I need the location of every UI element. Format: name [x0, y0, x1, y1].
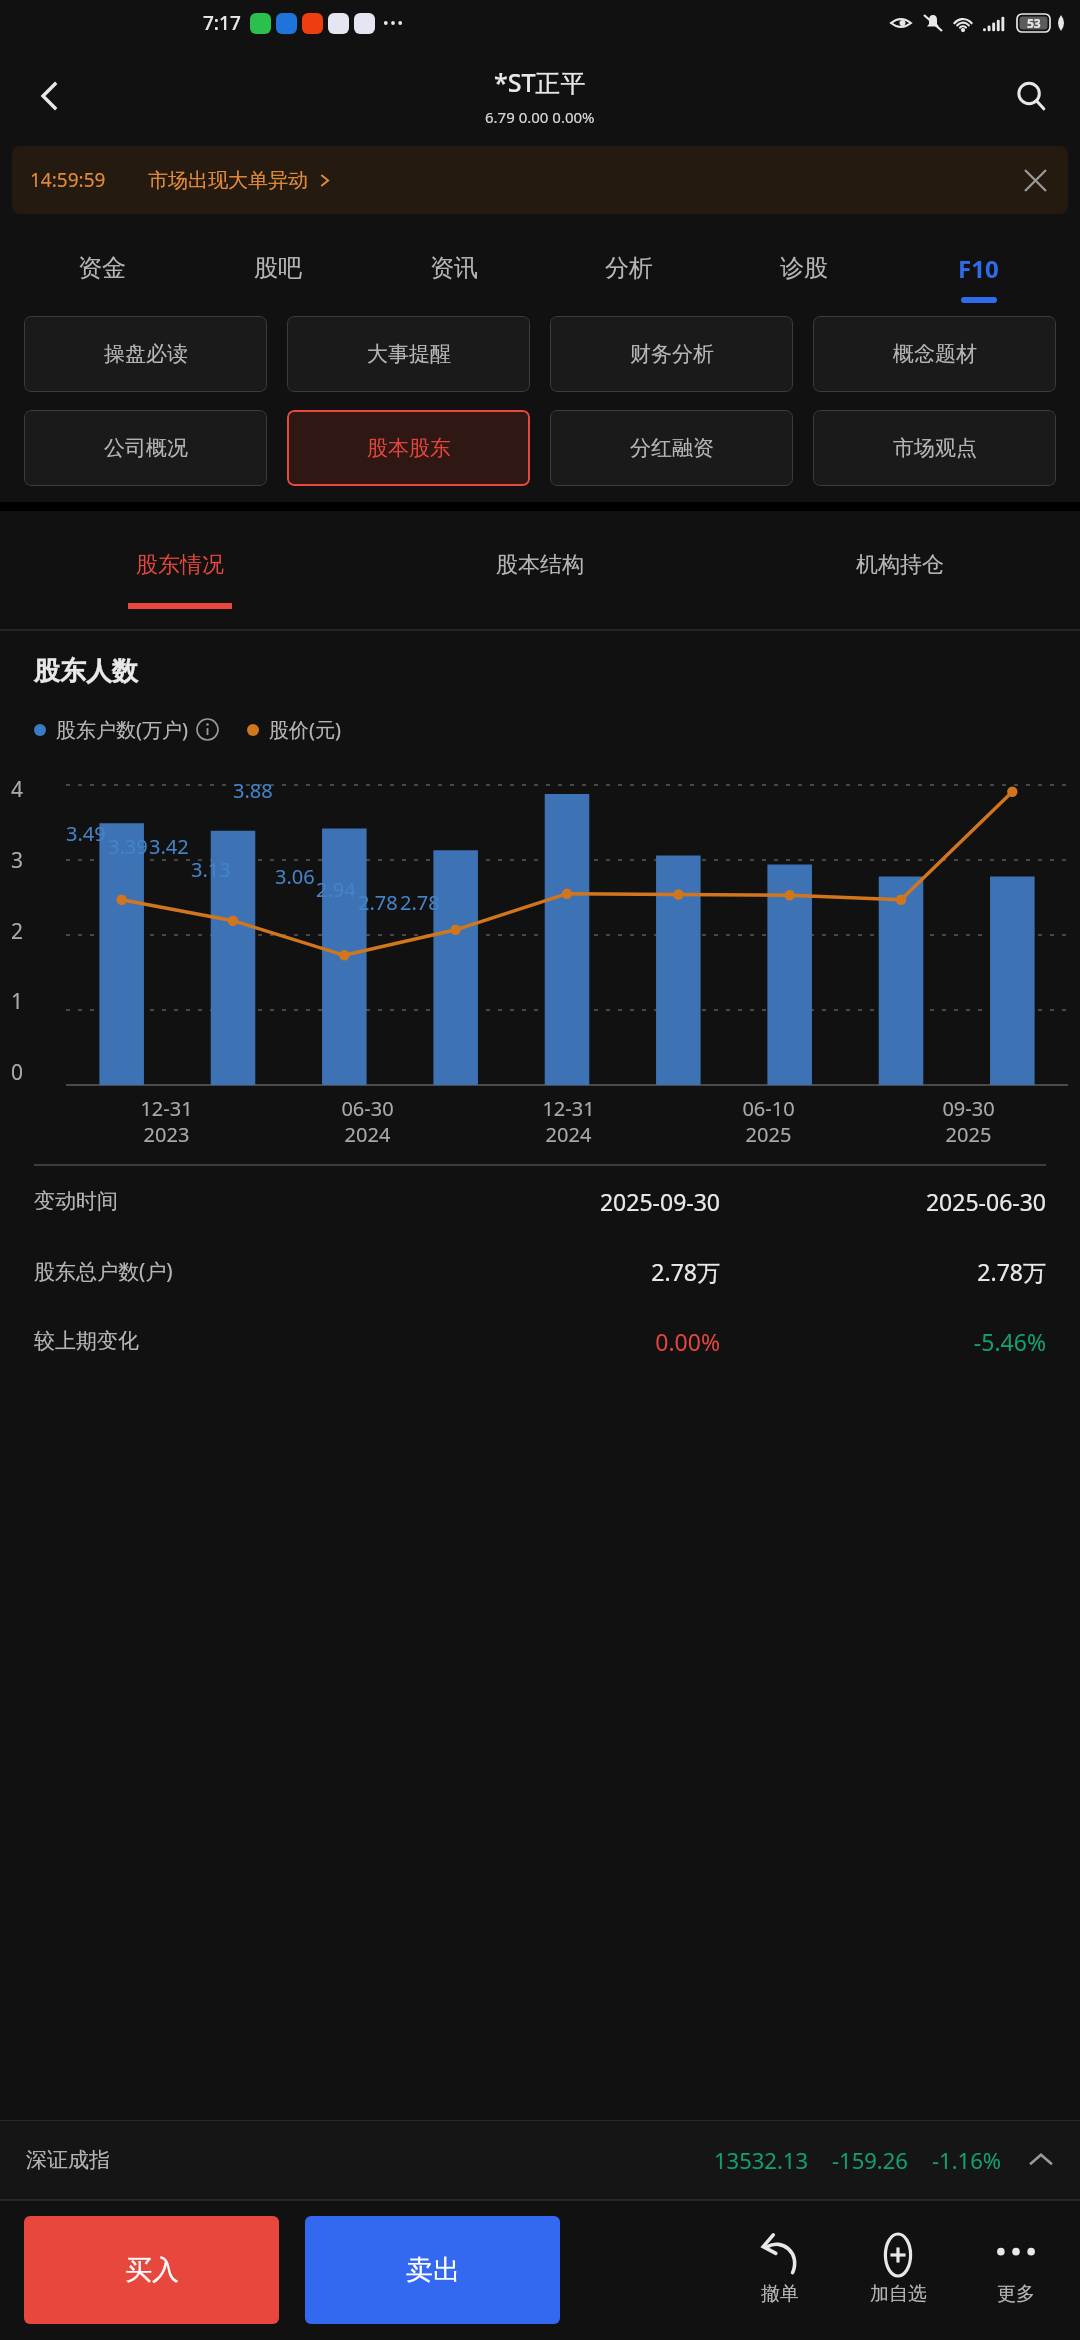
button[interactable]: 操盘必读 [24, 316, 267, 392]
staticText: 4 [11, 775, 24, 804]
staticText: 2025-09-30 [394, 1186, 720, 1217]
button[interactable]: 股本结构 [360, 511, 720, 631]
button[interactable]: 分析 [541, 228, 716, 316]
staticText: 更多 [997, 2282, 1035, 2306]
staticText: 3.13 [191, 856, 231, 883]
button[interactable]: 卖出 [305, 2216, 560, 2324]
staticText: *ST正平 [494, 65, 586, 99]
button[interactable]: 撤单 [734, 2234, 826, 2306]
staticText: 股东户数(万户) [56, 716, 188, 743]
staticText: 14:59:59 [30, 167, 106, 193]
staticText: 资金 [78, 253, 126, 283]
staticText: 操盘必读 [104, 341, 188, 367]
button[interactable]: 股吧 [190, 228, 366, 316]
staticText: 1 [11, 987, 24, 1016]
button[interactable]: 股东情况 [0, 511, 360, 631]
staticText: 概念题材 [893, 341, 977, 367]
staticText: 0 [11, 1058, 24, 1087]
staticText: 深证成指 [26, 2147, 110, 2173]
button[interactable]: 资金 [14, 228, 190, 316]
button[interactable]: 深证成指 [0, 2120, 1080, 2200]
staticText: 市场观点 [893, 435, 977, 461]
button[interactable]: 资讯 [366, 228, 541, 316]
staticText: 2.78 [400, 889, 440, 916]
staticText: 12-31 2024 [542, 1095, 595, 1148]
staticText: 分红融资 [630, 435, 714, 461]
staticText: 股东情况 [136, 551, 224, 579]
staticText: 财务分析 [630, 341, 714, 367]
staticText: 12-31 2023 [140, 1095, 193, 1148]
staticText: 买入 [125, 2253, 179, 2287]
button[interactable]: 市场观点 [813, 410, 1056, 486]
staticText: 06-10 2025 [742, 1095, 795, 1148]
staticText: -159.26 [832, 2145, 908, 2175]
button[interactable]: 公司概况 [24, 410, 267, 486]
button[interactable]: 大事提醒 [287, 316, 530, 392]
button[interactable]: 分红融资 [550, 410, 793, 486]
staticText: 股本股东 [367, 435, 451, 461]
staticText: 资讯 [430, 253, 478, 283]
staticText: 2.78万 [720, 1256, 1046, 1287]
staticText: 股东总户数(户) [34, 1257, 394, 1286]
staticText: 2 [11, 917, 24, 946]
staticText: 卖出 [406, 2253, 460, 2287]
button[interactable]: 买入 [24, 2216, 279, 2324]
staticText: -1.16% [932, 2145, 1002, 2175]
staticText: 3.42 [149, 833, 189, 860]
staticText: 加自选 [870, 2282, 927, 2306]
button[interactable]: 财务分析 [550, 316, 793, 392]
button[interactable]: F10 [891, 228, 1066, 316]
staticText: 3.88 [233, 777, 273, 804]
button[interactable]: 股本股东 [287, 410, 530, 486]
staticText: 股价(元) [269, 716, 341, 743]
staticText: F10 [958, 252, 999, 285]
staticText: 53 [1027, 15, 1041, 31]
staticText: 分析 [605, 253, 653, 283]
staticText: 机构持仓 [856, 551, 944, 579]
staticText: 股东人数 [34, 655, 138, 688]
button[interactable]: 诊股 [716, 228, 891, 316]
staticText: 3.49 [66, 820, 106, 847]
staticText: 3 [11, 846, 24, 875]
staticText: -5.46% [720, 1326, 1046, 1357]
button[interactable]: Back [18, 65, 80, 127]
staticText: 6.79 0.00 0.00% [485, 107, 595, 127]
staticText: 较上期变化 [34, 1328, 394, 1354]
staticText: 2.78 [358, 889, 398, 916]
staticText: 06-30 2024 [341, 1095, 394, 1148]
staticText: 3.39 [108, 833, 148, 860]
button[interactable]: Close [1010, 155, 1060, 205]
button[interactable]: 概念题材 [813, 316, 1056, 392]
button[interactable]: Search [1000, 65, 1062, 127]
staticText: 2025-06-30 [720, 1186, 1046, 1217]
button[interactable]: 机构持仓 [720, 511, 1080, 631]
staticText: 7:17 [203, 10, 241, 36]
staticText: 股吧 [254, 253, 302, 283]
staticText: 0.00% [394, 1326, 720, 1357]
staticText: 2.94 [316, 876, 356, 903]
staticText: 13532.13 [714, 2145, 808, 2175]
button[interactable]: 加自选 [852, 2234, 944, 2306]
staticText: 股本结构 [496, 551, 584, 579]
staticText: 公司概况 [104, 435, 188, 461]
staticText: 撤单 [761, 2282, 799, 2306]
staticText: 09-30 2025 [942, 1095, 995, 1148]
staticText: 大事提醒 [367, 341, 451, 367]
staticText: 诊股 [780, 253, 828, 283]
button[interactable]: 更多 [970, 2234, 1062, 2306]
staticText: 市场出现大单异动 [148, 168, 308, 193]
staticText: 3.06 [275, 863, 315, 890]
staticText: 2.78万 [394, 1256, 720, 1287]
staticText: 变动时间 [34, 1188, 394, 1214]
button[interactable]: 14:59:59 [12, 146, 1068, 214]
